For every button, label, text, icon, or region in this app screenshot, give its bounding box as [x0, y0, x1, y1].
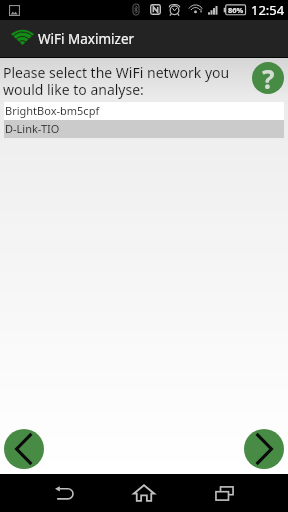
staticText: ?	[262, 62, 275, 93]
staticText: 12:54	[251, 1, 285, 19]
button[interactable]: Previous	[4, 429, 44, 469]
button[interactable]: Help	[252, 62, 284, 94]
button[interactable]: Next	[244, 429, 284, 469]
staticText: D-Link-TIO	[5, 121, 60, 136]
button[interactable]: Recents	[184, 474, 264, 512]
button[interactable]: BrightBox-bm5cpf	[4, 102, 284, 120]
button[interactable]: D-Link-TIO	[4, 120, 284, 138]
staticText: Please select the WiFi network you would…	[3, 63, 248, 99]
button[interactable]: Back	[24, 474, 104, 512]
staticText: 86%	[228, 5, 244, 15]
staticText: BrightBox-bm5cpf	[5, 103, 100, 118]
staticText: WiFi Maximizer	[38, 30, 135, 48]
button[interactable]: Home	[104, 474, 184, 512]
